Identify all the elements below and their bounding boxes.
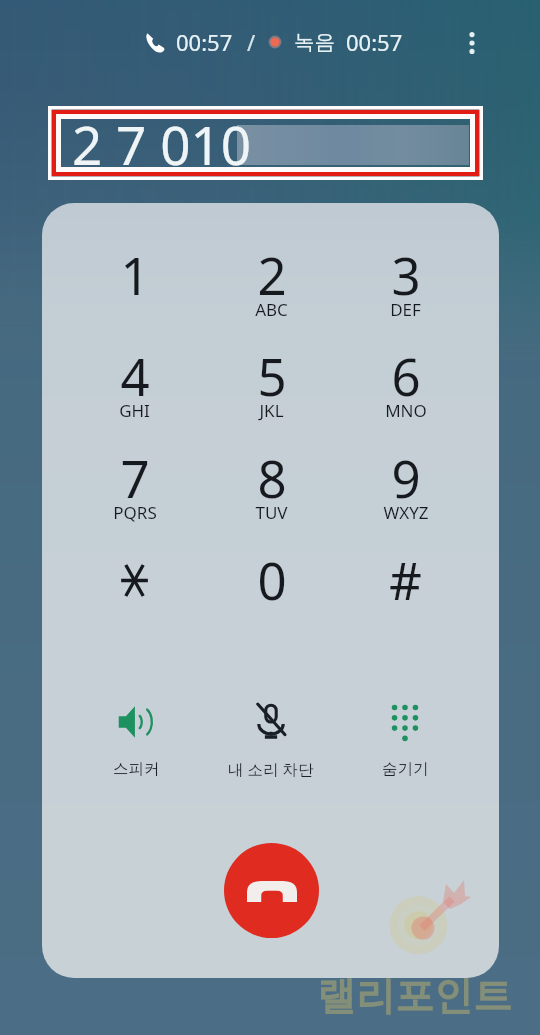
- staticText: 4: [120, 341, 150, 410]
- button[interactable]: 7: [67, 429, 202, 530]
- button[interactable]: 1: [67, 226, 202, 327]
- staticText: DEF: [390, 298, 421, 321]
- staticText: 1: [120, 240, 150, 309]
- staticText: 00:57: [176, 27, 233, 57]
- button[interactable]: End call: [224, 843, 319, 938]
- button[interactable]: 6: [338, 327, 473, 428]
- staticText: PQRS: [113, 501, 157, 524]
- staticText: 내 소리 차단: [228, 758, 314, 779]
- staticText: 5: [257, 341, 287, 410]
- staticText: JKL: [259, 399, 284, 422]
- button[interactable]: More options: [452, 23, 492, 63]
- staticText: /: [247, 27, 256, 57]
- staticText: 9: [391, 443, 421, 512]
- staticText: 2: [257, 240, 287, 309]
- button[interactable]: 9: [338, 429, 473, 530]
- button[interactable]: 0: [204, 531, 339, 632]
- staticText: WXYZ: [383, 501, 429, 524]
- button[interactable]: 8: [204, 429, 339, 530]
- staticText: 00:57: [346, 27, 403, 57]
- button[interactable]: #: [338, 531, 473, 632]
- staticText: 2 7 010: [72, 108, 252, 180]
- staticText: ABC: [255, 298, 288, 321]
- staticText: 8: [257, 443, 287, 512]
- staticText: 스피커: [113, 759, 160, 779]
- staticText: 7: [120, 443, 150, 512]
- staticText: 숨기기: [382, 759, 429, 779]
- staticText: #: [389, 545, 422, 614]
- button[interactable]: 5: [204, 327, 339, 428]
- button[interactable]: 숨기기: [338, 700, 472, 780]
- staticText: 녹음: [294, 29, 335, 55]
- button[interactable]: 3: [338, 226, 473, 327]
- staticText: TUV: [255, 501, 288, 524]
- staticText: 6: [391, 341, 421, 410]
- button[interactable]: 4: [67, 327, 202, 428]
- staticText: 랠리포인트: [317, 971, 512, 1020]
- staticText: MNO: [385, 399, 427, 422]
- staticText: 0: [257, 545, 287, 614]
- button[interactable]: 스피커: [69, 700, 203, 780]
- button[interactable]: [67, 531, 202, 632]
- staticText: 3: [391, 240, 421, 309]
- button[interactable]: 2: [204, 226, 339, 327]
- staticText: GHI: [119, 399, 150, 422]
- button[interactable]: 내 소리 차단: [204, 699, 338, 779]
